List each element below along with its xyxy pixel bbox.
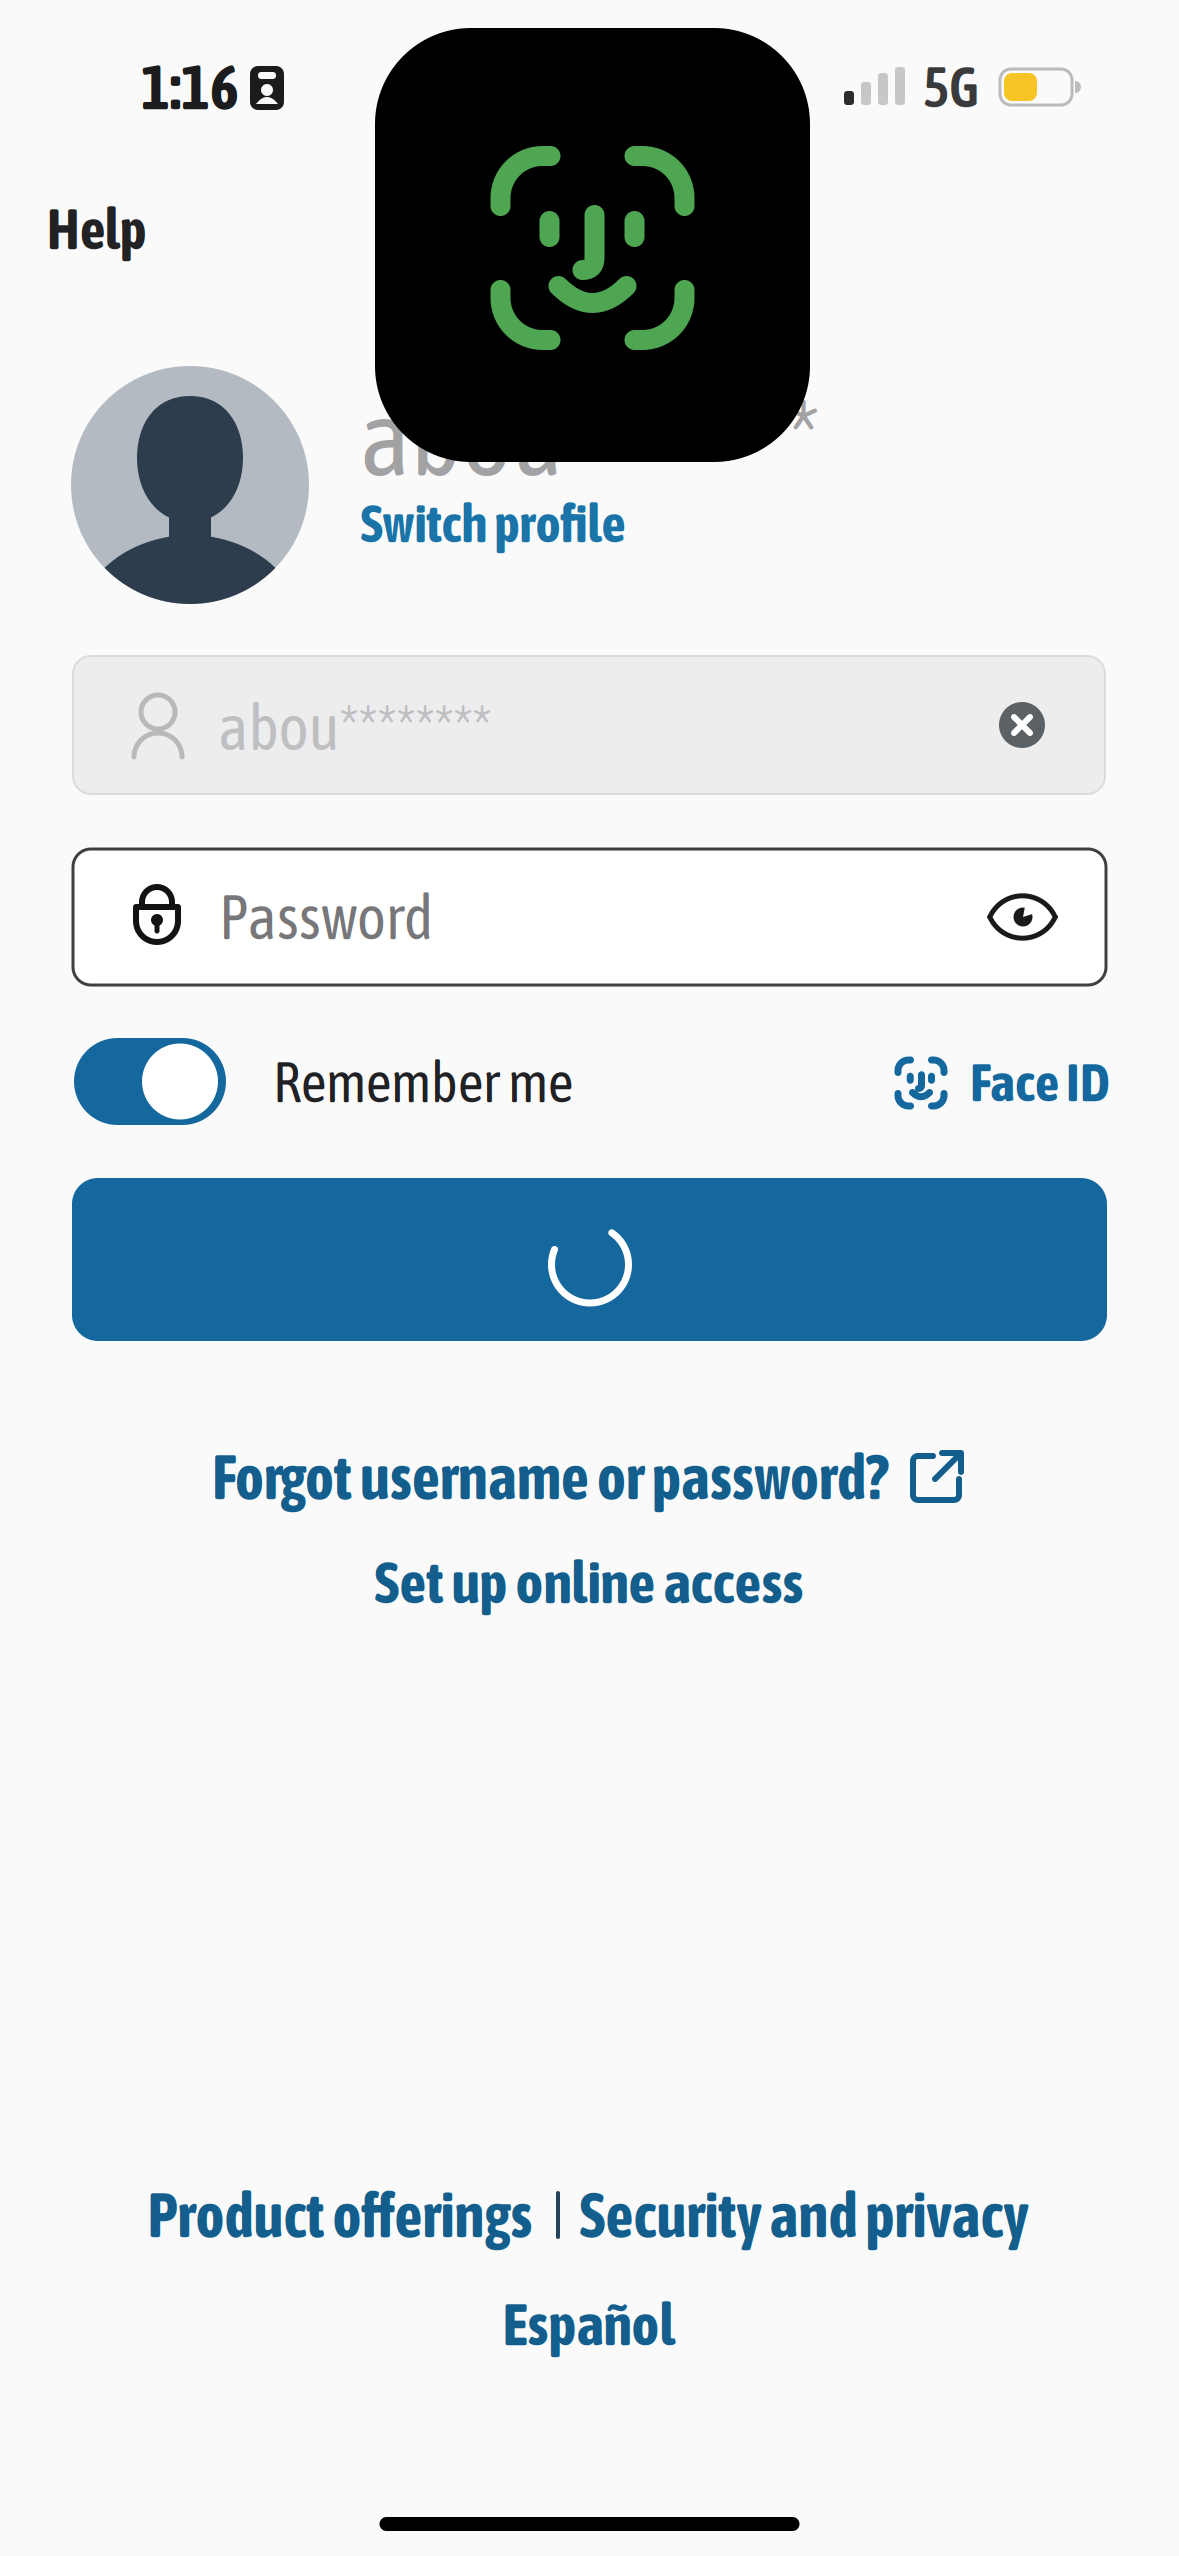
button[interactable]: Switch profile (360, 493, 625, 553)
staticText: 1:16 (141, 53, 239, 121)
button[interactable]: Face ID (895, 1037, 1145, 1129)
staticText: Product offerings (147, 2181, 532, 2249)
staticText: Help (47, 198, 147, 260)
staticText: Remember me (273, 1051, 573, 1113)
button[interactable]: Set up online access (374, 1549, 803, 1615)
staticText: Switch profile (360, 493, 625, 553)
staticText: Forgot username or password? (212, 1443, 888, 1511)
staticText: Español (502, 2291, 675, 2357)
staticText: 5G (923, 56, 979, 118)
staticText: Set up online access (374, 1549, 803, 1615)
button[interactable]: Help (47, 198, 147, 260)
button[interactable]: Español (502, 2291, 675, 2357)
staticText: Password (219, 883, 433, 951)
staticText: Face ID (970, 1052, 1110, 1112)
button[interactable]: Product offerings (147, 2181, 532, 2249)
button[interactable]: Show password (977, 882, 1067, 952)
staticText: abou******** (360, 377, 819, 497)
staticText: Security and privacy (579, 2181, 1028, 2249)
button[interactable]: Clear username (997, 700, 1047, 750)
button[interactable]: Forgot username or password? (212, 1443, 964, 1511)
button[interactable]: Security and privacy (579, 2181, 1028, 2249)
button[interactable]: Remember me (74, 1038, 226, 1125)
button[interactable]: Sign in (72, 1178, 1107, 1341)
staticText: abou******** (218, 691, 491, 763)
